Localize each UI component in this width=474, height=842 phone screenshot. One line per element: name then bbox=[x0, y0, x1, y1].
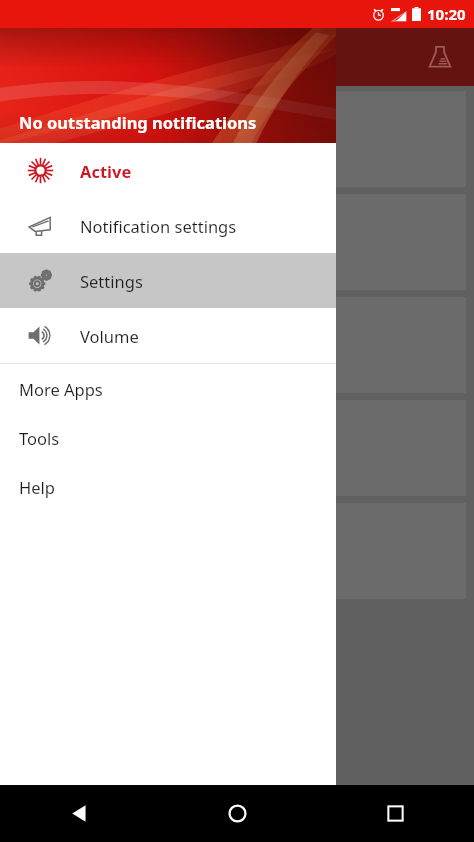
button[interactable]: Recent apps bbox=[316, 785, 474, 842]
button[interactable] bbox=[8, 91, 466, 187]
staticText: 10:20 bbox=[427, 4, 466, 24]
staticText: Active bbox=[80, 160, 132, 182]
button[interactable]: Tools bbox=[0, 413, 336, 462]
button[interactable]: Back bbox=[0, 785, 158, 842]
button[interactable]: Active bbox=[0, 143, 336, 198]
button[interactable]: on in the bbox=[8, 297, 466, 393]
button[interactable]: latest or highest bbox=[8, 194, 466, 290]
button[interactable]: Home bbox=[158, 785, 316, 842]
staticText: Tools bbox=[19, 427, 60, 449]
staticText: Volume bbox=[80, 325, 139, 347]
staticText: Help bbox=[19, 476, 55, 498]
staticText: on in the bbox=[22, 335, 85, 355]
staticText: No outstanding notifications bbox=[19, 111, 257, 133]
button[interactable]: Settings bbox=[0, 253, 336, 308]
staticText: Notification settings bbox=[80, 215, 237, 237]
button[interactable]: ols bbox=[8, 503, 466, 599]
button[interactable]: Help bbox=[0, 462, 336, 511]
staticText: More Apps bbox=[19, 378, 103, 400]
button[interactable]: Volume bbox=[0, 308, 336, 363]
button[interactable]: More Apps bbox=[0, 364, 336, 413]
staticText: Settings bbox=[80, 270, 143, 292]
button[interactable]: lets. Plus set up bbox=[8, 400, 466, 496]
button[interactable]: Notification settings bbox=[0, 198, 336, 253]
staticText: lets. Plus set up bbox=[22, 438, 132, 458]
button[interactable]: Lab bbox=[418, 35, 462, 79]
staticText: latest or highest bbox=[22, 232, 137, 252]
